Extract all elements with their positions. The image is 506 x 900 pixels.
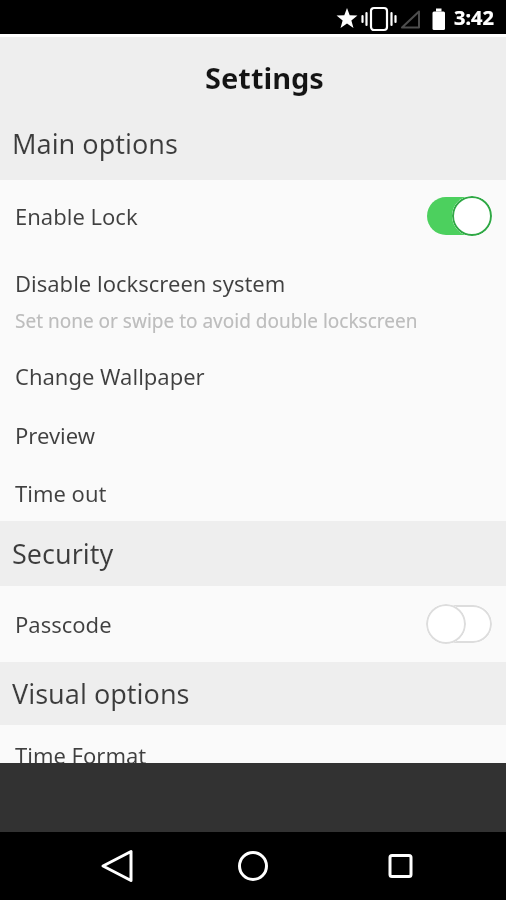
staticText: Time Format (15, 740, 147, 763)
staticText: Disable lockscreen system (15, 268, 286, 298)
button[interactable] (426, 604, 492, 644)
button[interactable]: Time out (0, 464, 506, 521)
button[interactable] (426, 196, 492, 236)
button[interactable]: Enable Lock (0, 180, 506, 252)
button[interactable] (0, 832, 168, 900)
staticText: Time out (15, 478, 107, 508)
button[interactable] (168, 832, 337, 900)
staticText: Set none or swipe to avoid double locksc… (15, 308, 418, 334)
staticText: Settings (205, 58, 324, 97)
staticText: Change Wallpaper (15, 361, 205, 391)
button[interactable]: Preview (0, 406, 506, 464)
staticText: Security (12, 535, 114, 572)
button[interactable]: Time Format (0, 725, 506, 763)
staticText: Passcode (15, 609, 112, 639)
button[interactable]: Change Wallpaper (0, 345, 506, 406)
staticText: Preview (15, 420, 96, 450)
button[interactable] (337, 832, 506, 900)
button[interactable]: Disable lockscreen system (0, 252, 506, 345)
staticText: Visual options (12, 675, 190, 712)
staticText: Enable Lock (15, 201, 138, 231)
button[interactable]: Passcode (0, 586, 506, 662)
staticText: Main options (12, 125, 178, 162)
staticText: 3:42 (454, 4, 494, 31)
